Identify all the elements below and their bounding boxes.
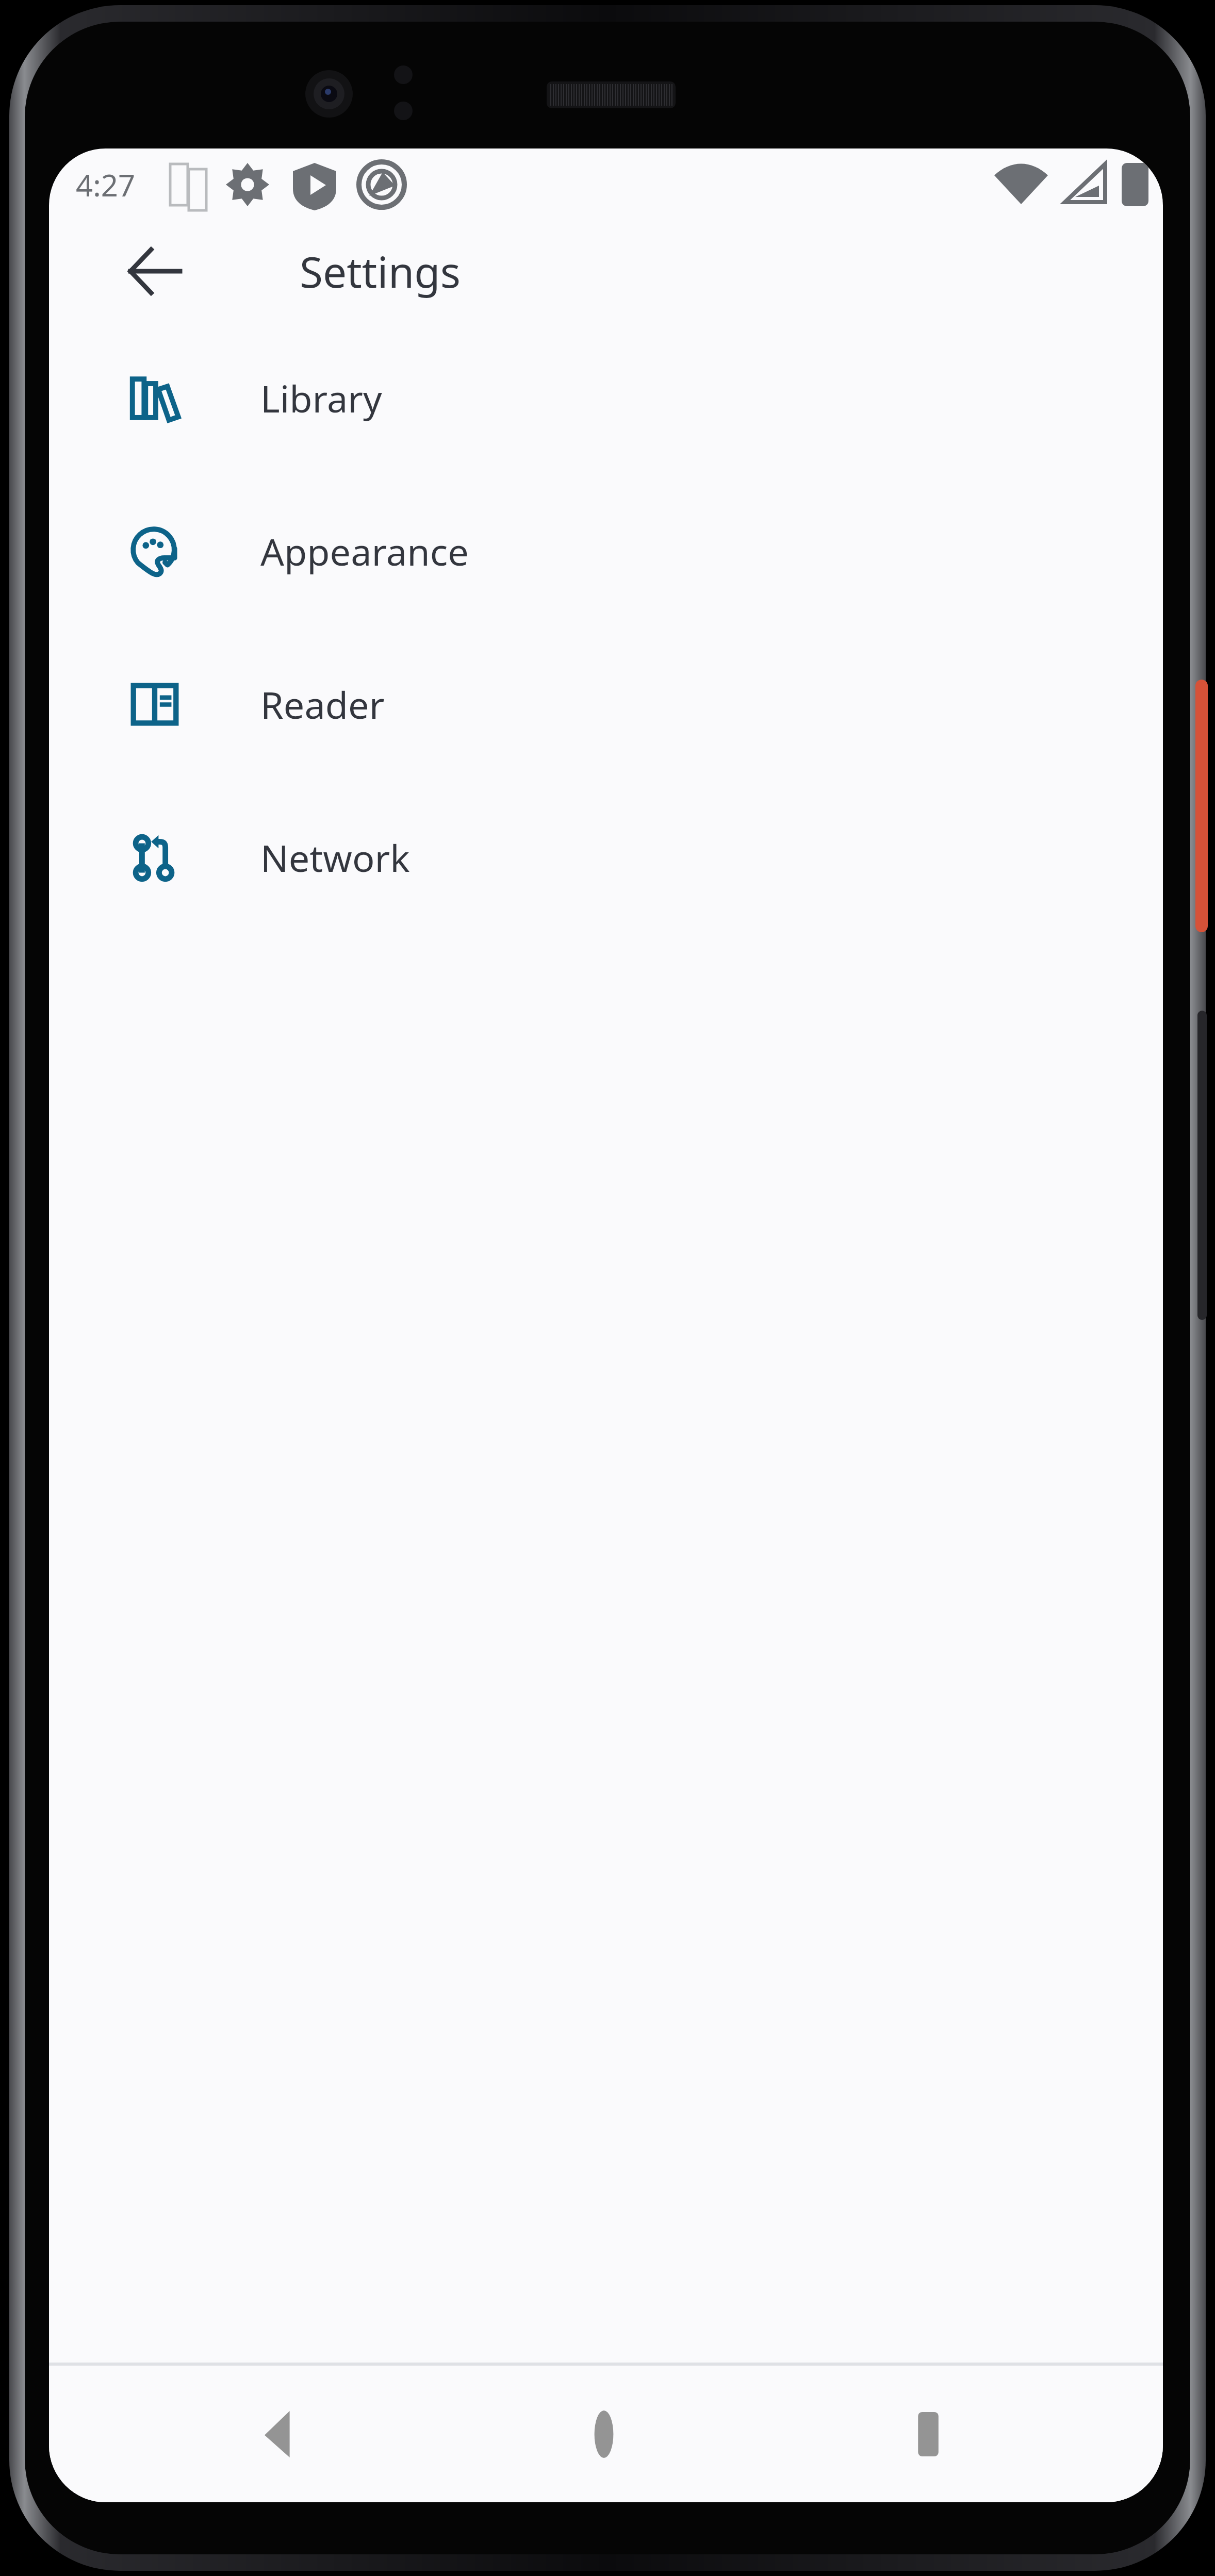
staticText: Reader <box>260 679 385 730</box>
button[interactable]: Appearance <box>49 474 1163 628</box>
button[interactable]: Back <box>227 2383 330 2486</box>
staticText: Network <box>260 832 410 883</box>
button[interactable]: Library <box>49 321 1163 474</box>
staticText: Library <box>260 373 382 423</box>
button[interactable]: Reader <box>49 628 1163 781</box>
button[interactable]: Recent apps <box>877 2383 980 2486</box>
button[interactable]: Back <box>101 221 209 321</box>
button[interactable]: Network <box>49 781 1163 934</box>
staticText: Settings <box>300 242 461 300</box>
staticText: 4:27 <box>76 164 136 205</box>
button[interactable]: Home <box>552 2383 655 2486</box>
staticText: Appearance <box>260 526 469 576</box>
